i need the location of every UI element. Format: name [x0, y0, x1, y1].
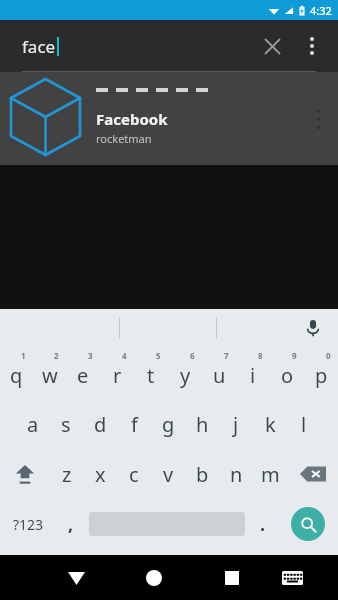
button[interactable]: 4 — [100, 347, 134, 399]
staticText: face — [22, 35, 56, 58]
button[interactable]: Voice input — [298, 313, 328, 343]
staticText: a — [27, 411, 39, 438]
button[interactable]: 5 — [134, 347, 168, 399]
staticText: h — [196, 411, 209, 438]
staticText: 8 — [258, 350, 263, 361]
staticText: o — [281, 362, 294, 389]
staticText: . — [260, 512, 266, 537]
button[interactable]: Clear — [250, 24, 294, 68]
button[interactable]: Home — [134, 558, 174, 598]
staticText: s — [61, 411, 71, 438]
staticText: 4 — [122, 350, 127, 361]
button[interactable]: Facebook — [0, 72, 338, 165]
button[interactable]: Recents — [212, 558, 252, 598]
button[interactable]: f — [117, 399, 151, 449]
staticText: v — [163, 461, 174, 488]
button[interactable]: 0 — [304, 347, 338, 399]
staticText: z — [62, 461, 72, 488]
button[interactable]: c — [117, 449, 151, 499]
button[interactable]: s — [49, 399, 83, 449]
button[interactable]: k — [253, 399, 287, 449]
button[interactable]: x — [83, 449, 117, 499]
staticText: 1 — [21, 350, 26, 361]
staticText: i — [250, 362, 256, 389]
staticText: d — [94, 411, 107, 438]
button[interactable]: j — [219, 399, 253, 449]
button[interactable]: d — [83, 399, 117, 449]
button[interactable]: l — [287, 399, 321, 449]
staticText: , — [68, 512, 74, 537]
button[interactable]: a — [16, 399, 49, 449]
staticText: Facebook — [96, 109, 168, 129]
staticText: ?123 — [13, 515, 44, 534]
button[interactable]: 8 — [236, 347, 270, 399]
button[interactable]: More options — [294, 28, 330, 64]
button[interactable]: n — [219, 449, 253, 499]
staticText: x — [95, 461, 106, 488]
staticText: 3 — [88, 350, 93, 361]
staticText: p — [315, 362, 328, 389]
staticText: 5 — [156, 350, 161, 361]
staticText: f — [131, 411, 138, 438]
staticText: g — [162, 411, 175, 438]
staticText: t — [147, 362, 155, 389]
button[interactable]: 1 — [0, 347, 33, 399]
staticText: 2 — [54, 350, 59, 361]
staticText: rocketman — [96, 131, 152, 146]
button[interactable]: v — [151, 449, 185, 499]
staticText: 6 — [190, 350, 195, 361]
button[interactable]: 7 — [202, 347, 236, 399]
button[interactable]: Hide keyboard — [56, 558, 96, 598]
staticText: 4:32 — [310, 3, 332, 18]
staticText: w — [42, 362, 58, 389]
staticText: 0 — [326, 350, 331, 361]
staticText: m — [261, 461, 280, 488]
button[interactable]: m — [253, 449, 287, 499]
staticText: l — [301, 411, 307, 438]
button[interactable]: , — [56, 499, 86, 549]
button[interactable]: 2 — [33, 347, 66, 399]
staticText: 9 — [292, 350, 297, 361]
staticText: j — [233, 411, 239, 438]
button[interactable]: 3 — [66, 347, 100, 399]
button[interactable]: h — [185, 399, 219, 449]
button[interactable]: z — [50, 449, 83, 499]
staticText: y — [180, 362, 191, 389]
staticText: n — [230, 461, 243, 488]
staticText: c — [129, 461, 139, 488]
button[interactable]: Shift — [0, 449, 50, 499]
staticText: r — [113, 362, 122, 389]
button[interactable]: Search — [291, 507, 325, 541]
staticText: b — [196, 461, 209, 488]
button[interactable]: 9 — [270, 347, 304, 399]
button[interactable]: . — [248, 499, 278, 549]
staticText: q — [10, 362, 23, 389]
staticText: u — [213, 362, 226, 389]
button[interactable]: 6 — [168, 347, 202, 399]
staticText: e — [77, 362, 89, 389]
button[interactable]: b — [185, 449, 219, 499]
button[interactable]: ?123 — [0, 499, 56, 549]
button[interactable]: Backspace — [287, 449, 338, 499]
staticText: 7 — [224, 350, 229, 361]
button[interactable]: g — [151, 399, 185, 449]
staticText: k — [265, 411, 276, 438]
button[interactable]: Switch keyboard — [273, 559, 311, 597]
